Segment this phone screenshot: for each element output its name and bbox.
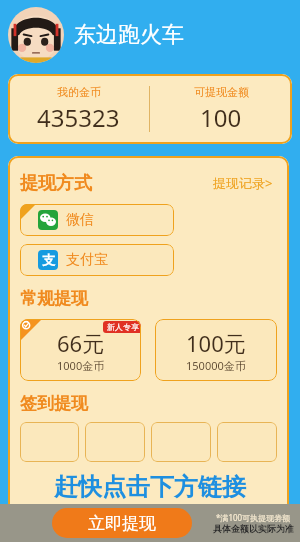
button[interactable]: 立即提现 xyxy=(52,508,192,538)
staticText: 签到提现 xyxy=(20,393,88,414)
button[interactable]: 微信 xyxy=(20,204,174,236)
button[interactable] xyxy=(151,422,211,462)
staticText: 新人专享 xyxy=(107,322,139,332)
staticText: 100元 xyxy=(186,328,246,358)
staticText: 150000金币 xyxy=(186,358,246,373)
staticText: 支 xyxy=(42,252,55,268)
button[interactable]: Profile avatar xyxy=(8,7,64,63)
staticText: 我的金币 xyxy=(57,85,101,99)
staticText: 100 xyxy=(200,101,242,134)
staticText: 赶快点击下方链接 xyxy=(54,472,246,502)
staticText: 微信 xyxy=(66,211,94,229)
button[interactable]: 66元 xyxy=(20,319,141,381)
staticText: 可提现金额 xyxy=(194,85,249,99)
button[interactable]: 提现记录> xyxy=(209,170,277,196)
button[interactable] xyxy=(20,422,79,462)
button[interactable] xyxy=(85,422,145,462)
staticText: 435323 xyxy=(37,101,120,134)
button[interactable] xyxy=(217,422,277,462)
staticText: 东边跑火车 xyxy=(74,21,184,49)
staticText: 1000金币 xyxy=(57,358,105,373)
staticText: *满100可执提现劵额 xyxy=(216,512,291,523)
staticText: 支付宝 xyxy=(66,251,108,269)
staticText: 66元 xyxy=(57,328,105,358)
button[interactable]: 支 xyxy=(20,244,174,276)
staticText: 提现方式 xyxy=(20,172,92,195)
staticText: 立即提现 xyxy=(88,513,156,534)
button[interactable]: 100元 xyxy=(155,319,277,381)
staticText: 常规提现 xyxy=(20,288,88,309)
staticText: 具体金额以实际为准 xyxy=(213,523,294,534)
staticText: 提现记录> xyxy=(213,174,273,192)
